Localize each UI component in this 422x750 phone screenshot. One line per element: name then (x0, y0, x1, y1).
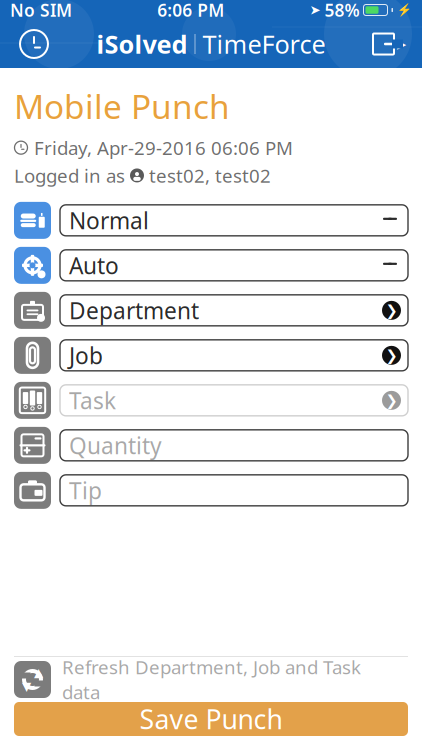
staticText: No SIM (10, 0, 72, 21)
staticText: ❯ (385, 347, 397, 364)
staticText: iSolved (96, 27, 187, 61)
staticText: ❯ (385, 392, 397, 409)
staticText: test02, test02 (149, 163, 271, 188)
staticText: Refresh Department, Job and Task data (62, 655, 361, 704)
staticText: Friday, Apr-29-2016 06:06 PM (34, 135, 293, 160)
button[interactable]: Normal (60, 205, 408, 236)
button[interactable]: Department (60, 295, 408, 326)
staticText: 6:06 PM (157, 0, 224, 21)
staticText: Quantity (69, 430, 162, 460)
staticText: Normal (69, 205, 149, 235)
staticText: Logged in as (14, 163, 125, 188)
staticText: 58% (324, 0, 359, 21)
button[interactable]: Job (60, 340, 408, 371)
button[interactable]: Auto (60, 250, 408, 281)
button[interactable]: Time clock (10, 22, 58, 66)
button[interactable]: ▲ (0, 657, 422, 702)
staticText: Job (69, 340, 103, 370)
staticText: ▶ (397, 37, 406, 51)
staticText: ▲ (34, 666, 43, 679)
button[interactable]: Task (60, 385, 408, 416)
staticText: ❯ (385, 302, 397, 319)
staticText: Tip (69, 475, 102, 505)
staticText: ▼ (22, 679, 31, 693)
staticText: Auto (69, 250, 119, 280)
staticText: Department (69, 295, 199, 325)
staticText: ➤ (309, 2, 320, 17)
staticText: Task (69, 385, 116, 415)
staticText: ⚡ (397, 3, 412, 17)
button[interactable]: Quantity (60, 430, 408, 461)
button[interactable]: Save Punch (0, 702, 422, 736)
staticText: Mobile Punch (14, 84, 230, 128)
button[interactable]: Tip (60, 475, 408, 506)
staticText: Save Punch (139, 701, 282, 737)
button[interactable]: Log out (364, 25, 412, 63)
staticText: TimeForce (202, 27, 325, 61)
